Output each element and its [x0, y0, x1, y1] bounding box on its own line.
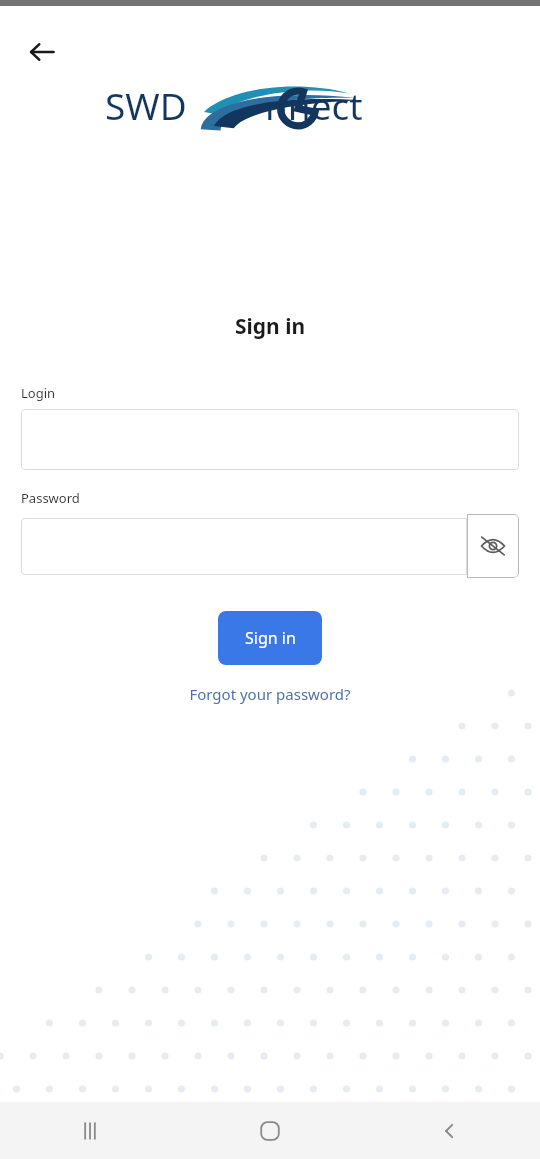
button[interactable] [21, 518, 467, 575]
staticText: Sign in [235, 312, 306, 341]
staticText: Password [21, 489, 80, 507]
staticText: Forgot your password? [189, 684, 351, 704]
button[interactable] [21, 409, 519, 470]
button[interactable]: Recent apps [0, 1102, 180, 1159]
button[interactable]: Forgot your password? [181, 680, 359, 708]
button[interactable]: Sign in [218, 611, 322, 665]
staticText: SWD [105, 80, 187, 130]
staticText: Sign in [245, 627, 296, 649]
button[interactable]: Show password [467, 514, 519, 578]
button[interactable]: Back [360, 1102, 540, 1159]
button[interactable]: Back [20, 30, 64, 74]
staticText: Login [21, 384, 56, 402]
staticText: nnect [265, 80, 363, 130]
button[interactable]: Home [180, 1102, 360, 1159]
